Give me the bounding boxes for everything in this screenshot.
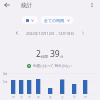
button[interactable]: More options bbox=[86, 0, 98, 11]
staticText: 火 bbox=[20, 95, 23, 99]
staticText: 時間 bbox=[41, 55, 48, 59]
button[interactable]: Next period bbox=[79, 29, 87, 37]
button[interactable]: 全ての時間 bbox=[41, 16, 73, 24]
staticText: 2022年12月12日 - 12月18日 bbox=[26, 31, 75, 36]
staticText: 39 bbox=[50, 48, 60, 60]
staticText: 2時 bbox=[3, 72, 8, 76]
staticText: 水 bbox=[28, 95, 31, 99]
button[interactable]: Previous period bbox=[13, 29, 21, 37]
staticText: 分 bbox=[60, 55, 64, 59]
staticText: 木 bbox=[37, 95, 40, 99]
staticText: 月 bbox=[84, 95, 87, 99]
staticText: 金 bbox=[49, 95, 52, 99]
staticText: 日 bbox=[73, 95, 76, 99]
staticText: 1時 bbox=[3, 80, 8, 84]
button[interactable]: Back bbox=[1, 0, 13, 11]
staticText: 先週に比べて 36分少ない bbox=[33, 63, 73, 68]
staticText: 統計 bbox=[21, 2, 32, 9]
staticText: 月 bbox=[12, 95, 15, 99]
button[interactable]: App filter bbox=[22, 16, 38, 24]
staticText: 土 bbox=[61, 95, 64, 99]
staticText: 全ての時間 bbox=[44, 18, 65, 23]
staticText: 2 bbox=[36, 48, 41, 60]
